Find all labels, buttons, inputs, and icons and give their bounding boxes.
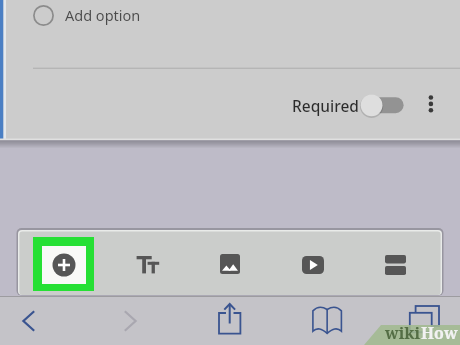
button[interactable]: Bookmarks — [308, 302, 346, 334]
button[interactable]: Insert image — [206, 248, 254, 280]
button[interactable]: Add option — [0, 0, 460, 30]
button[interactable]: Add section — [370, 249, 420, 281]
staticText: Add option — [65, 5, 141, 25]
staticText: How — [421, 322, 458, 344]
button[interactable]: Required toggle — [356, 90, 408, 121]
button[interactable]: Insert video — [287, 249, 339, 281]
button[interactable]: Required — [285, 92, 360, 118]
staticText: wiki — [385, 322, 421, 344]
button[interactable]: Text formatting — [130, 250, 176, 276]
staticText: Required — [292, 95, 359, 116]
button[interactable]: More options — [418, 88, 444, 114]
button[interactable]: Tabs — [404, 300, 446, 334]
button[interactable]: Forward — [116, 302, 144, 330]
button[interactable]: Back — [15, 302, 43, 330]
button[interactable]: Add question — [33, 237, 94, 291]
button[interactable]: Share — [212, 298, 248, 338]
